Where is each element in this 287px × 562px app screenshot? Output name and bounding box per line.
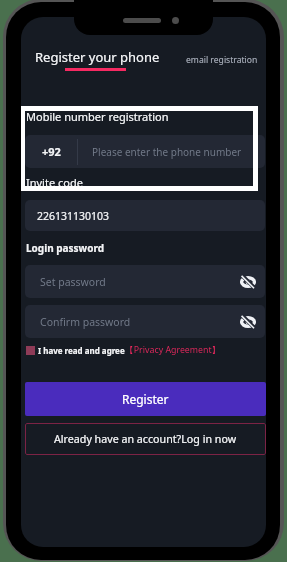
staticText: 【Privacy Agreement】 [125,344,221,356]
staticText: Register [122,391,169,407]
button[interactable]: Toggle password visibility [235,309,261,335]
staticText: I have read and agree [38,345,125,356]
staticText: Set password [40,275,106,289]
button[interactable]: Confirm password [25,305,265,338]
button[interactable]: email registration [182,50,262,70]
staticText: +92 [42,144,61,159]
staticText: Confirm password [40,315,131,329]
staticText: Please enter the phone number [92,145,242,159]
button[interactable]: Set password [25,265,265,298]
staticText: Invite code [26,175,83,190]
button[interactable]: 226131130103 [25,200,265,231]
button[interactable]: +92 [25,135,265,168]
staticText: Mobile number registration [26,109,169,124]
button[interactable]: I have read and agree [24,342,223,358]
staticText: Login password [26,241,104,255]
staticText: email registration [186,54,258,66]
button[interactable]: Toggle password visibility [235,269,261,295]
button[interactable]: Register [25,382,266,416]
button[interactable]: Register your phone [35,48,160,66]
staticText: 226131130103 [37,209,110,223]
staticText: Already have an account?Log in now [54,432,237,447]
button[interactable]: Already have an account?Log in now [25,423,266,455]
staticText: Register your phone [35,48,160,66]
